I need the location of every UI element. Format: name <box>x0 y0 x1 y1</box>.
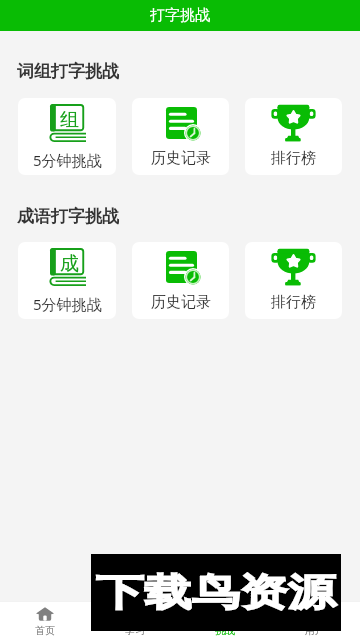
staticText: 组 <box>60 108 79 132</box>
button[interactable]: 排行榜 <box>245 242 342 319</box>
staticText: 历史记录 <box>151 293 211 312</box>
staticText: 历史记录 <box>151 149 211 168</box>
button[interactable]: 历史记录 <box>132 242 229 319</box>
staticText: 成 <box>60 252 79 276</box>
staticText: 挑战 <box>215 624 235 637</box>
staticText: 成语打字挑战 <box>17 206 119 227</box>
staticText: 下载鸟资源 <box>96 570 336 616</box>
button[interactable]: 学习 <box>90 602 180 640</box>
staticText: 打字挑战 <box>150 6 210 25</box>
button[interactable]: 挑战 <box>180 602 270 640</box>
staticText: 首页 <box>35 624 55 637</box>
button[interactable]: 成 <box>18 242 116 319</box>
button[interactable]: 组 <box>18 98 116 175</box>
button[interactable]: 历史记录 <box>132 98 229 175</box>
staticText: 排行榜 <box>271 149 316 168</box>
staticText: 5分钟挑战 <box>33 150 102 170</box>
staticText: 学习 <box>125 624 145 637</box>
staticText: 用户 <box>305 624 325 637</box>
staticText: 5分钟挑战 <box>33 294 102 314</box>
staticText: 排行榜 <box>271 293 316 312</box>
button[interactable]: 排行榜 <box>245 98 342 175</box>
staticText: 词组打字挑战 <box>17 61 119 82</box>
button[interactable]: 首页 <box>0 602 90 640</box>
button[interactable]: 用户 <box>270 602 360 640</box>
